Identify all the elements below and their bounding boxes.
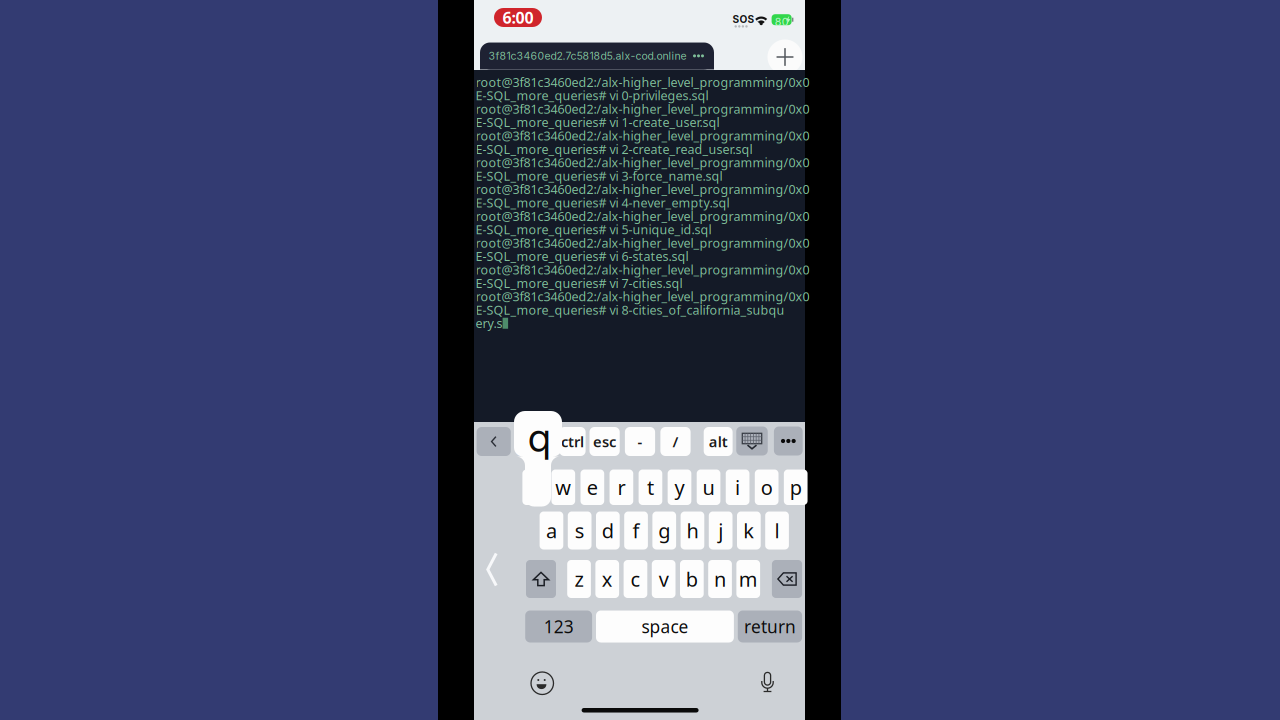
staticText: d — [602, 517, 614, 544]
button[interactable]: space — [596, 610, 734, 642]
button[interactable]: m — [736, 560, 760, 598]
staticText: E-SQL_more_queries# vi 1-create_user.sql — [476, 114, 720, 131]
button[interactable]: a — [540, 511, 563, 549]
staticText: f — [633, 517, 640, 544]
button[interactable]: l — [765, 511, 789, 549]
button[interactable]: Emoji — [531, 672, 553, 694]
staticText: k — [743, 517, 754, 544]
button[interactable]: - — [625, 427, 655, 456]
staticText: 123 — [544, 615, 574, 638]
staticText: E-SQL_more_queries# vi 5-unique_id.sql — [476, 221, 712, 238]
button[interactable]: b — [680, 560, 704, 598]
button[interactable]: esc — [589, 427, 620, 456]
staticText: root@3f81c3460ed2:/alx-higher_level_prog… — [476, 288, 810, 305]
staticText: root@3f81c3460ed2:/alx-higher_level_prog… — [476, 127, 810, 144]
button[interactable]: p — [784, 469, 807, 505]
button[interactable]: r — [609, 469, 633, 505]
staticText: j — [718, 517, 723, 544]
button[interactable]: e — [580, 469, 604, 505]
staticText: n — [714, 566, 726, 592]
staticText: w — [555, 474, 571, 501]
button[interactable]: New session — [767, 39, 802, 74]
staticText: r — [617, 474, 625, 501]
staticText: space — [641, 615, 688, 638]
button[interactable]: j — [709, 511, 732, 549]
button[interactable]: ctrl — [559, 427, 586, 456]
staticText: 3f81c3460ed2.7c5818d5.alx-cod.online — [488, 49, 686, 62]
staticText: e — [587, 474, 598, 501]
staticText: o — [761, 474, 773, 501]
staticText: u — [702, 474, 714, 501]
button[interactable]: Delete — [772, 560, 802, 598]
staticText: m — [739, 566, 758, 592]
staticText: root@3f81c3460ed2:/alx-higher_level_prog… — [476, 234, 810, 251]
staticText: esc — [593, 432, 616, 451]
button[interactable]: o — [755, 469, 778, 505]
button[interactable]: t — [639, 469, 662, 505]
button[interactable]: y — [668, 469, 691, 505]
staticText: b — [686, 566, 698, 592]
button[interactable]: v — [652, 560, 675, 598]
button[interactable]: d — [596, 511, 620, 549]
button[interactable]: s — [568, 511, 591, 549]
button[interactable]: f — [624, 511, 648, 549]
staticText: - — [637, 432, 642, 451]
staticText: s — [575, 517, 585, 544]
staticText: 80 — [775, 15, 789, 28]
staticText: / — [672, 432, 678, 451]
button[interactable]: z — [567, 560, 591, 598]
staticText: E-SQL_more_queries# vi 6-states.sql — [476, 248, 689, 265]
staticText: q — [528, 413, 551, 461]
button[interactable]: Dictation — [760, 671, 777, 695]
staticText: root@3f81c3460ed2:/alx-higher_level_prog… — [476, 261, 810, 278]
button[interactable]: 123 — [525, 610, 592, 642]
staticText: alt — [709, 432, 728, 451]
staticText: ery.s — [476, 315, 503, 332]
staticText: t — [647, 474, 654, 501]
staticText: E-SQL_more_queries# vi 2-create_read_use… — [476, 140, 753, 158]
button[interactable]: i — [726, 469, 749, 505]
staticText: E-SQL_more_queries# vi 4-never_empty.sql — [476, 194, 730, 211]
button[interactable]: w — [551, 469, 575, 505]
button[interactable]: k — [737, 511, 761, 549]
button[interactable]: Hide keyboard — [736, 427, 767, 455]
staticText: root@3f81c3460ed2:/alx-higher_level_prog… — [476, 154, 810, 171]
staticText: c — [630, 566, 640, 592]
staticText: 6:00 — [502, 7, 533, 28]
staticText: y — [674, 474, 684, 501]
button[interactable]: Shift — [526, 560, 556, 598]
staticText: x — [602, 566, 613, 592]
staticText: v — [659, 566, 669, 592]
staticText: SOS — [732, 13, 754, 25]
staticText: root@3f81c3460ed2:/alx-higher_level_prog… — [476, 100, 810, 117]
button[interactable]: c — [624, 560, 647, 598]
button[interactable]: More — [773, 427, 803, 455]
staticText: g — [658, 517, 670, 544]
staticText: E-SQL_more_queries# vi 0-privileges.sql — [476, 87, 709, 104]
button[interactable]: Previous — [477, 427, 511, 456]
staticText: ctrl — [561, 432, 584, 451]
button[interactable]: u — [697, 469, 720, 505]
button[interactable]: / — [660, 427, 691, 456]
button[interactable]: 3f81c3460ed2.7c5818d5.alx-cod.online — [480, 42, 714, 69]
staticText: root@3f81c3460ed2:/alx-higher_level_prog… — [476, 207, 810, 225]
staticText: return — [744, 615, 796, 638]
staticText: root@3f81c3460ed2:/alx-higher_level_prog… — [476, 73, 810, 91]
staticText: a — [546, 517, 557, 544]
staticText: E-SQL_more_queries# vi 3-force_name.sql — [476, 167, 723, 184]
staticText: root@3f81c3460ed2:/alx-higher_level_prog… — [476, 181, 810, 198]
staticText: p — [790, 474, 802, 501]
button[interactable]: h — [681, 511, 704, 549]
staticText: E-SQL_more_queries# vi 7-cities.sql — [476, 274, 683, 292]
staticText: E-SQL_more_queries# vi 8-cities_of_calif… — [476, 301, 785, 318]
button[interactable]: q — [522, 469, 546, 505]
button[interactable]: Tab — [515, 427, 547, 456]
staticText: z — [575, 566, 584, 592]
staticText: l — [775, 517, 780, 544]
button[interactable]: return — [738, 610, 802, 642]
button[interactable]: g — [652, 511, 676, 549]
button[interactable]: x — [595, 560, 619, 598]
button[interactable]: n — [708, 560, 732, 598]
button[interactable]: alt — [704, 427, 733, 456]
